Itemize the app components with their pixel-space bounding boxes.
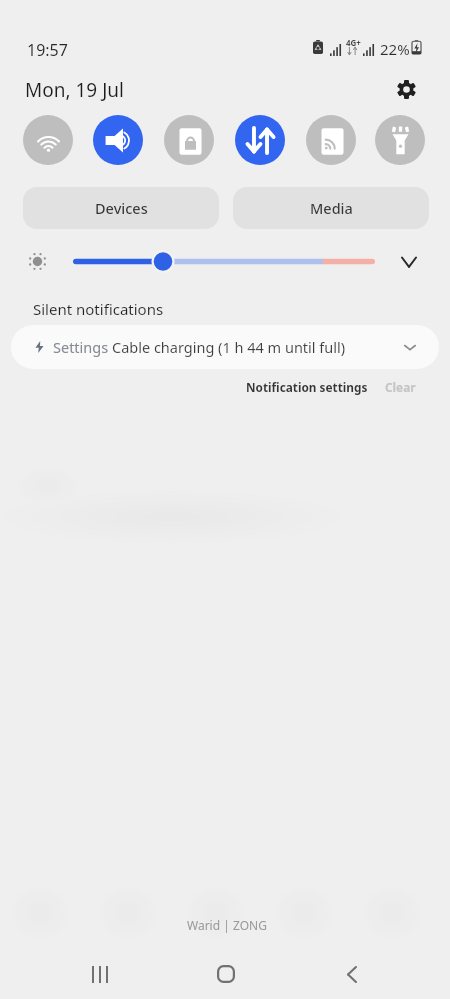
button[interactable]: Home: [202, 950, 250, 998]
button[interactable]: Clear: [385, 375, 416, 399]
staticText: Warid | ZONG: [187, 917, 267, 933]
button[interactable]: Media: [233, 187, 429, 229]
staticText: 19:57: [27, 39, 68, 61]
button[interactable]: Mobile data: [235, 115, 285, 165]
button[interactable]: Auto rotate: [164, 115, 214, 165]
staticText: Settings: [53, 337, 109, 357]
button[interactable]: Expand brightness: [393, 246, 425, 278]
staticText: Devices: [95, 198, 148, 218]
staticText: Mon, 19 Jul: [25, 77, 125, 103]
button[interactable]: Devices: [23, 187, 219, 229]
button[interactable]: Notification settings: [246, 375, 368, 399]
staticText: 22%: [380, 39, 410, 59]
button[interactable]: Mobile hotspot: [306, 115, 356, 165]
button[interactable]: Settings: [11, 325, 439, 369]
staticText: Silent notifications: [33, 299, 164, 319]
button[interactable]: Wi-Fi: [23, 115, 73, 165]
staticText: Notification settings: [246, 379, 368, 395]
button[interactable]: Flashlight: [375, 115, 425, 165]
staticText: 4G+: [346, 37, 361, 48]
button[interactable]: Settings: [390, 73, 422, 105]
staticText: Clear: [385, 379, 416, 395]
button[interactable]: Recent apps: [76, 950, 124, 998]
staticText: Cable charging (1 h 44 m until full): [112, 337, 346, 357]
button[interactable]: Sound: [93, 115, 143, 165]
staticText: Media: [310, 198, 353, 218]
button[interactable]: Back: [328, 950, 376, 998]
